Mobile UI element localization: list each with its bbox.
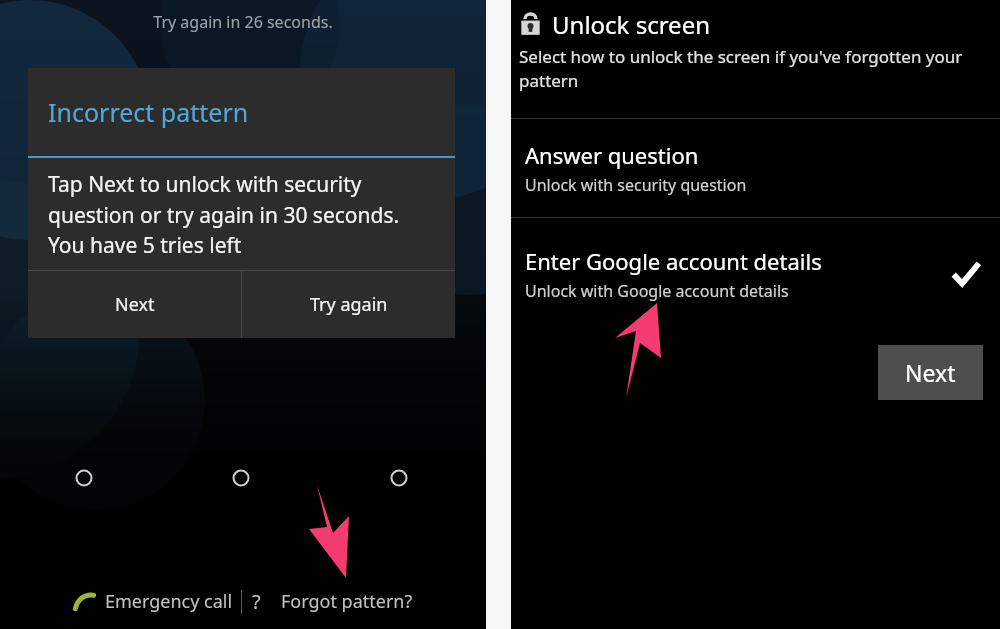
staticText: Unlock with Google account details [525,280,789,302]
staticText: Select how to unlock the screen if you'v… [519,45,994,92]
button[interactable]: Next [28,271,241,338]
staticText: Enter Google account details [525,246,822,276]
staticText: Unlock screen [552,8,711,41]
staticText: Try again [310,292,388,317]
staticText: ? [252,588,261,615]
button[interactable]: Try again [242,271,455,338]
staticText: Next [905,357,956,388]
staticText: Incorrect pattern [48,95,249,129]
other: Selected [952,260,980,288]
staticText: Forgot pattern? [281,589,413,614]
button[interactable]: Answer question [511,119,1000,217]
button[interactable]: ? [242,582,423,621]
button[interactable]: Enter Google account details [511,218,1000,330]
staticText: Answer question [525,140,699,170]
button[interactable]: Emergency call [64,583,241,620]
staticText: Unlock with security question [525,174,747,196]
staticText: Next [115,292,155,317]
staticText: Emergency call [105,589,233,614]
staticText: Try again in 26 seconds. [0,11,486,33]
other: Emergency call [72,590,96,614]
button[interactable]: Next [878,345,983,400]
staticText: Tap Next to unlock with security questio… [48,170,433,259]
